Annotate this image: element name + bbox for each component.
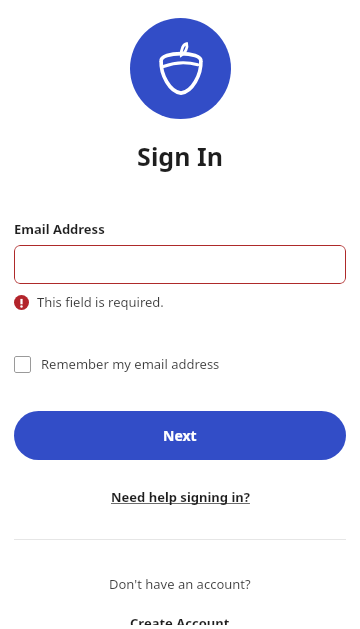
staticText: Remember my email address [41, 355, 220, 373]
button[interactable]: Next [14, 411, 346, 460]
staticText: This field is required. [37, 293, 164, 311]
staticText: Need help signing in? [111, 488, 250, 506]
other: College Board logo [130, 18, 231, 119]
staticText: Email Address [14, 220, 105, 238]
button[interactable]: Remember my email address [14, 355, 220, 373]
staticText: Don't have an account? [109, 575, 251, 593]
staticText: Create Account [130, 614, 230, 625]
staticText: Next [163, 426, 197, 445]
button[interactable]: Need help signing in? [107, 484, 254, 510]
button[interactable]: Create Account [126, 610, 234, 629]
staticText: Sign In [137, 139, 223, 173]
button[interactable] [14, 245, 346, 284]
